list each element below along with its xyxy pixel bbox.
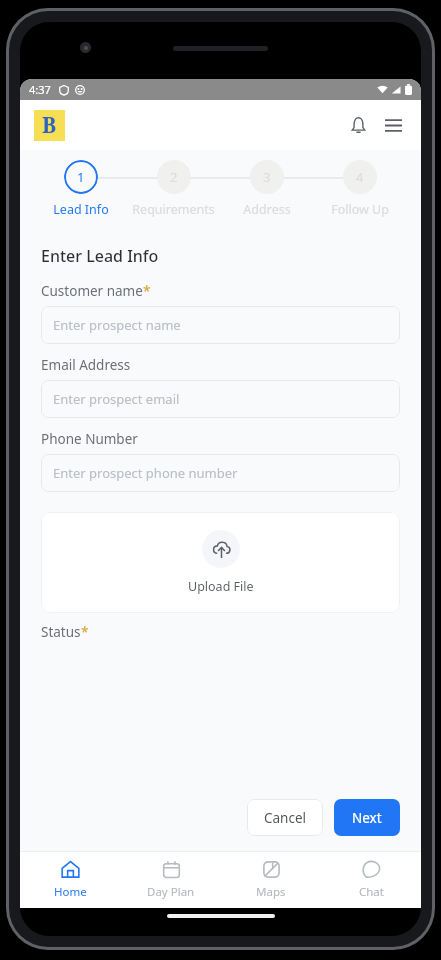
button[interactable]: Enter prospect email	[41, 380, 400, 418]
button[interactable]: 3	[220, 160, 313, 219]
button[interactable]: 4	[313, 160, 406, 219]
button[interactable]: Menu	[376, 108, 410, 142]
staticText: Chat	[359, 884, 384, 900]
staticText: Enter prospect phone number	[53, 464, 238, 482]
staticText: Address	[243, 201, 291, 218]
staticText: 3	[263, 168, 271, 186]
staticText: Cancel	[264, 809, 307, 827]
button[interactable]: Cancel	[247, 799, 323, 836]
staticText: Home	[54, 884, 87, 900]
staticText: *	[143, 282, 151, 300]
staticText: Email Address	[41, 356, 131, 374]
staticText: Maps	[256, 884, 286, 900]
button[interactable]: Day Plan	[121, 852, 221, 908]
staticText: Phone Number	[41, 430, 138, 448]
staticText: 2	[170, 168, 178, 186]
staticText: Requirements	[132, 201, 215, 218]
staticText: Customer name	[41, 282, 143, 300]
staticText: Follow Up	[331, 201, 389, 218]
button[interactable]: Maps	[221, 852, 321, 908]
staticText: Upload File	[188, 578, 254, 595]
staticText: 1	[77, 168, 85, 186]
staticText: Enter Lead Info	[41, 245, 159, 267]
button[interactable]: Enter prospect name	[41, 306, 400, 344]
button[interactable]: Notifications	[341, 108, 375, 142]
staticText: 4:37	[29, 82, 51, 97]
button[interactable]: Home	[20, 852, 121, 908]
staticText: 4	[356, 168, 364, 186]
button[interactable]: Enter prospect phone number	[41, 454, 400, 492]
staticText: Status	[41, 623, 81, 641]
button[interactable]: Upload File	[41, 512, 400, 613]
staticText: Next	[352, 809, 382, 827]
staticText: Enter prospect name	[53, 316, 181, 334]
button[interactable]: 1	[35, 160, 127, 219]
staticText: Enter prospect email	[53, 390, 180, 408]
staticText: B	[42, 111, 57, 140]
button[interactable]: Next	[334, 799, 400, 836]
button[interactable]: Chat	[321, 852, 421, 908]
button[interactable]: 2	[127, 160, 220, 219]
staticText: *	[81, 623, 89, 641]
staticText: Lead Info	[53, 201, 109, 218]
button[interactable]: B	[34, 110, 65, 141]
staticText: Day Plan	[147, 884, 195, 900]
